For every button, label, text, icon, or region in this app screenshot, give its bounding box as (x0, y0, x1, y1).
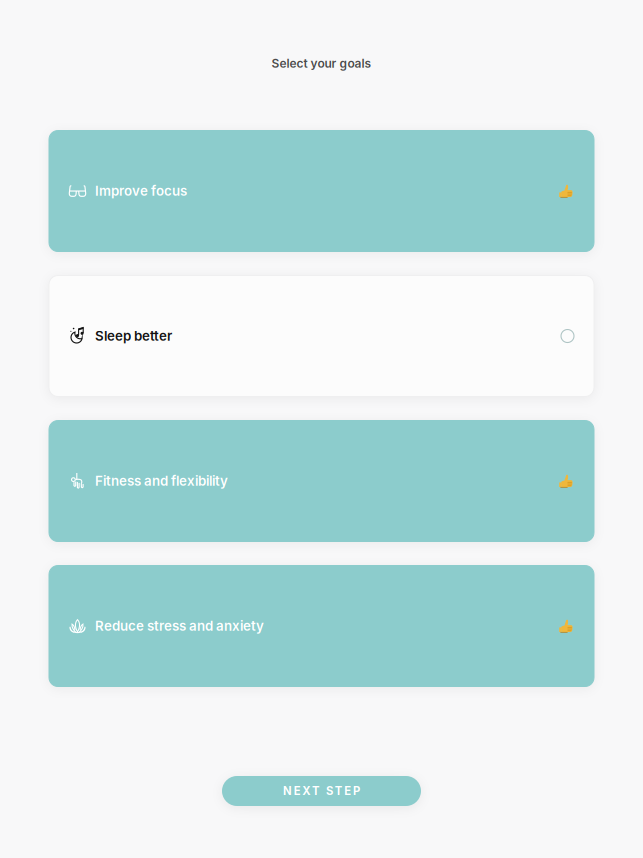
staticText: Fitness and flexibility (95, 473, 228, 489)
staticText: NEXT STEP (283, 784, 360, 798)
staticText: Improve focus (95, 183, 187, 199)
button[interactable]: Fitness and flexibility (49, 420, 594, 541)
button[interactable]: Reduce stress and anxiety (49, 565, 594, 686)
button[interactable]: Sleep better (49, 275, 594, 396)
button[interactable]: NEXT STEP (222, 776, 421, 806)
staticText: Reduce stress and anxiety (95, 618, 264, 634)
button[interactable]: Improve focus (49, 130, 594, 251)
staticText: Select your goals (271, 56, 371, 70)
staticText: Sleep better (95, 328, 172, 344)
